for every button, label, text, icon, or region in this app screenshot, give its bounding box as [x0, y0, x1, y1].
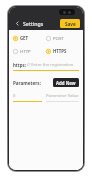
- button[interactable]: GET: [13, 34, 46, 42]
- staticText: Add New: [56, 80, 76, 86]
- button[interactable]: HTTPS: [46, 47, 79, 55]
- staticText: GET: [20, 35, 28, 41]
- staticText: // Enter the registration endpoint: [27, 62, 79, 68]
- staticText: POST: [53, 35, 64, 41]
- button[interactable]: Add New: [53, 78, 79, 87]
- staticText: 0: [13, 93, 16, 99]
- staticText: HTTP: [20, 48, 31, 54]
- button[interactable]: POST: [46, 34, 79, 42]
- staticText: Settings: [23, 20, 44, 27]
- button[interactable]: Parameter Value: [46, 93, 79, 102]
- staticText: HTTPS: [53, 48, 67, 54]
- staticText: Parameter Value: [46, 93, 79, 99]
- button[interactable]: Save: [60, 19, 80, 28]
- button[interactable]: HTTP: [13, 47, 46, 55]
- button[interactable]: Back: [12, 18, 22, 28]
- staticText: Save: [65, 21, 76, 27]
- staticText: https:: [13, 62, 26, 68]
- button[interactable]: 0: [13, 93, 42, 102]
- staticText: Parameters:: [13, 80, 41, 86]
- button[interactable]: https:: [13, 62, 79, 71]
